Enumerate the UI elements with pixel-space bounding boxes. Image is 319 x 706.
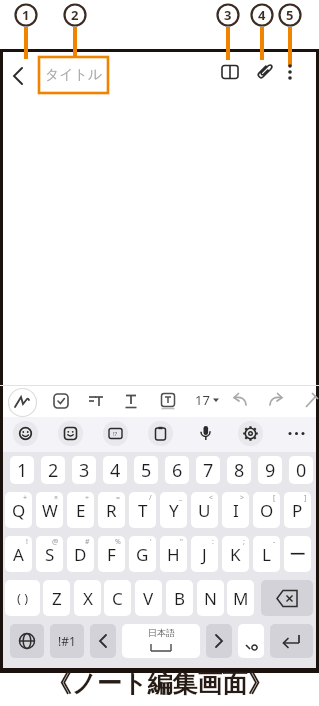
button[interactable]: A [5, 536, 32, 572]
staticText: 17 [195, 391, 210, 409]
button[interactable]: O [253, 492, 280, 528]
button[interactable] [266, 391, 286, 409]
staticText: Z [52, 587, 62, 610]
staticText: @ [52, 537, 59, 547]
staticText: ÷ [85, 493, 90, 503]
button[interactable]: U [191, 492, 218, 528]
button[interactable]: S [36, 536, 63, 572]
button[interactable] [230, 391, 250, 409]
button[interactable]: Q [5, 492, 32, 528]
staticText: S [45, 543, 55, 566]
button[interactable] [90, 624, 116, 658]
button[interactable] [238, 624, 264, 658]
button[interactable]: 17 [192, 390, 220, 410]
staticText: = [116, 493, 121, 503]
button[interactable] [13, 421, 38, 446]
staticText: R [106, 499, 117, 522]
button[interactable]: T [129, 492, 156, 528]
button[interactable]: 日本語 [122, 624, 200, 658]
button[interactable]: 6 [165, 456, 189, 484]
button[interactable]: C [104, 580, 131, 616]
button[interactable]: B [166, 580, 193, 616]
button[interactable]: H [160, 536, 187, 572]
button[interactable]: !? [103, 421, 128, 446]
button[interactable]: 8 [227, 456, 251, 484]
button[interactable] [261, 580, 313, 616]
button[interactable]: 7 [196, 456, 220, 484]
staticText: 3 [79, 458, 90, 483]
button[interactable] [253, 61, 275, 83]
staticText: / [149, 493, 152, 503]
staticText: - [273, 537, 276, 547]
button[interactable]: 9 [258, 456, 282, 484]
button[interactable] [206, 624, 232, 658]
button[interactable]: I [222, 492, 249, 528]
staticText: L [262, 543, 271, 566]
button[interactable]: 4 [103, 456, 127, 484]
button[interactable]: Y [160, 492, 187, 528]
button[interactable]: R [98, 492, 125, 528]
button[interactable] [220, 63, 240, 81]
staticText: E [76, 499, 86, 522]
button[interactable]: G [129, 536, 156, 572]
button[interactable]: !#1 [50, 624, 84, 658]
button[interactable] [148, 421, 173, 446]
staticText: " [180, 537, 183, 547]
button[interactable] [270, 624, 313, 658]
staticText: × [54, 493, 59, 503]
button[interactable]: V [135, 580, 162, 616]
button[interactable] [283, 63, 297, 81]
button[interactable]: 3 [72, 456, 96, 484]
staticText: 5 [141, 458, 152, 483]
button[interactable] [52, 392, 70, 410]
button[interactable]: F [98, 536, 125, 572]
button[interactable]: ー [284, 536, 311, 572]
button[interactable] [10, 624, 44, 658]
button[interactable] [8, 388, 37, 417]
staticText: 9 [265, 458, 276, 483]
button[interactable] [87, 392, 105, 410]
button[interactable] [58, 421, 83, 446]
button[interactable]: N [197, 580, 224, 616]
button[interactable]: 1 [10, 456, 34, 484]
staticText: B [174, 587, 186, 610]
button[interactable]: J [191, 536, 218, 572]
staticText: 0 [296, 458, 307, 483]
staticText: 3 [224, 6, 232, 24]
staticText: ( ) [17, 589, 29, 607]
button[interactable] [122, 392, 140, 410]
staticText: W [42, 499, 58, 522]
button[interactable]: ( ) [5, 580, 40, 616]
button[interactable]: P [284, 492, 311, 528]
button[interactable] [159, 392, 177, 410]
button[interactable]: L [253, 536, 280, 572]
button[interactable]: W [36, 492, 63, 528]
button[interactable]: 2 [41, 456, 65, 484]
button[interactable]: E [67, 492, 94, 528]
staticText: K [230, 543, 241, 566]
staticText: P [292, 499, 303, 522]
staticText: !? [113, 430, 118, 438]
button[interactable] [238, 421, 263, 446]
button[interactable]: D [67, 536, 94, 572]
button[interactable]: X [74, 580, 101, 616]
staticText: ー [289, 544, 306, 565]
staticText: 6 [172, 458, 183, 483]
staticText: N [204, 587, 217, 610]
staticText: : [212, 537, 214, 547]
button[interactable]: 5 [134, 456, 158, 484]
button[interactable]: 0 [289, 456, 313, 484]
staticText: % [115, 537, 121, 547]
button[interactable]: M [227, 580, 254, 616]
staticText: 4 [110, 458, 121, 483]
button[interactable]: K [222, 536, 249, 572]
staticText: O [260, 499, 274, 522]
staticText: M [233, 587, 249, 610]
button[interactable]: タイトル [39, 57, 108, 93]
button[interactable] [284, 421, 309, 446]
button[interactable] [10, 66, 28, 86]
staticText: ; [243, 537, 245, 547]
button[interactable]: Z [43, 580, 70, 616]
staticText: X [83, 587, 93, 610]
button[interactable] [193, 421, 218, 446]
